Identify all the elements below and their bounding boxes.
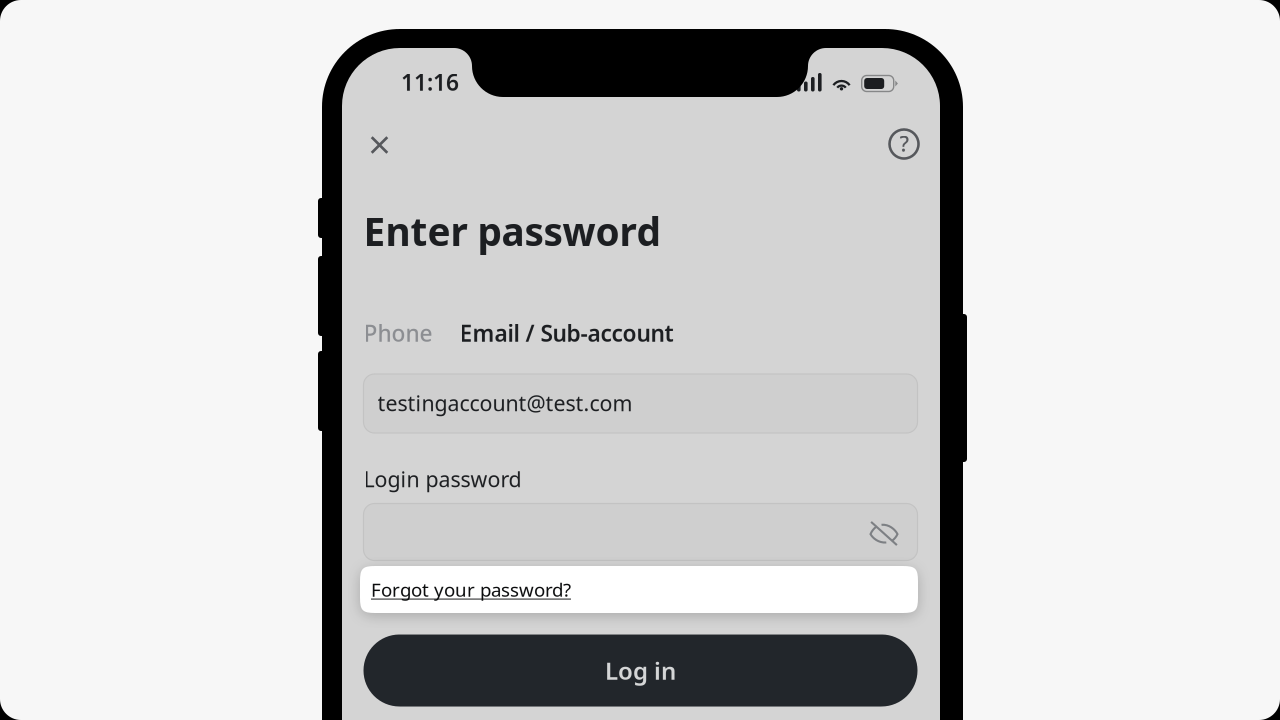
button[interactable]: Help bbox=[881, 121, 927, 167]
staticText: ? bbox=[899, 129, 909, 158]
staticText: Login password bbox=[363, 465, 521, 493]
staticText: Email / Sub-account bbox=[459, 318, 673, 348]
staticText: testingaccount@test.com bbox=[377, 389, 632, 417]
staticText: Phone bbox=[363, 318, 432, 348]
staticText: 11:16 bbox=[401, 67, 459, 97]
staticText: Enter password bbox=[363, 205, 660, 257]
button[interactable]: Show password bbox=[862, 511, 906, 555]
button[interactable]: Log in bbox=[363, 634, 917, 706]
button[interactable]: Email / Sub-account bbox=[459, 318, 679, 348]
button[interactable]: Forgot your password? bbox=[360, 566, 918, 613]
button[interactable]: Phone bbox=[363, 318, 433, 348]
staticText: Forgot your password? bbox=[371, 577, 571, 602]
staticText: Log in bbox=[605, 655, 676, 686]
button[interactable]: Close bbox=[356, 122, 402, 168]
